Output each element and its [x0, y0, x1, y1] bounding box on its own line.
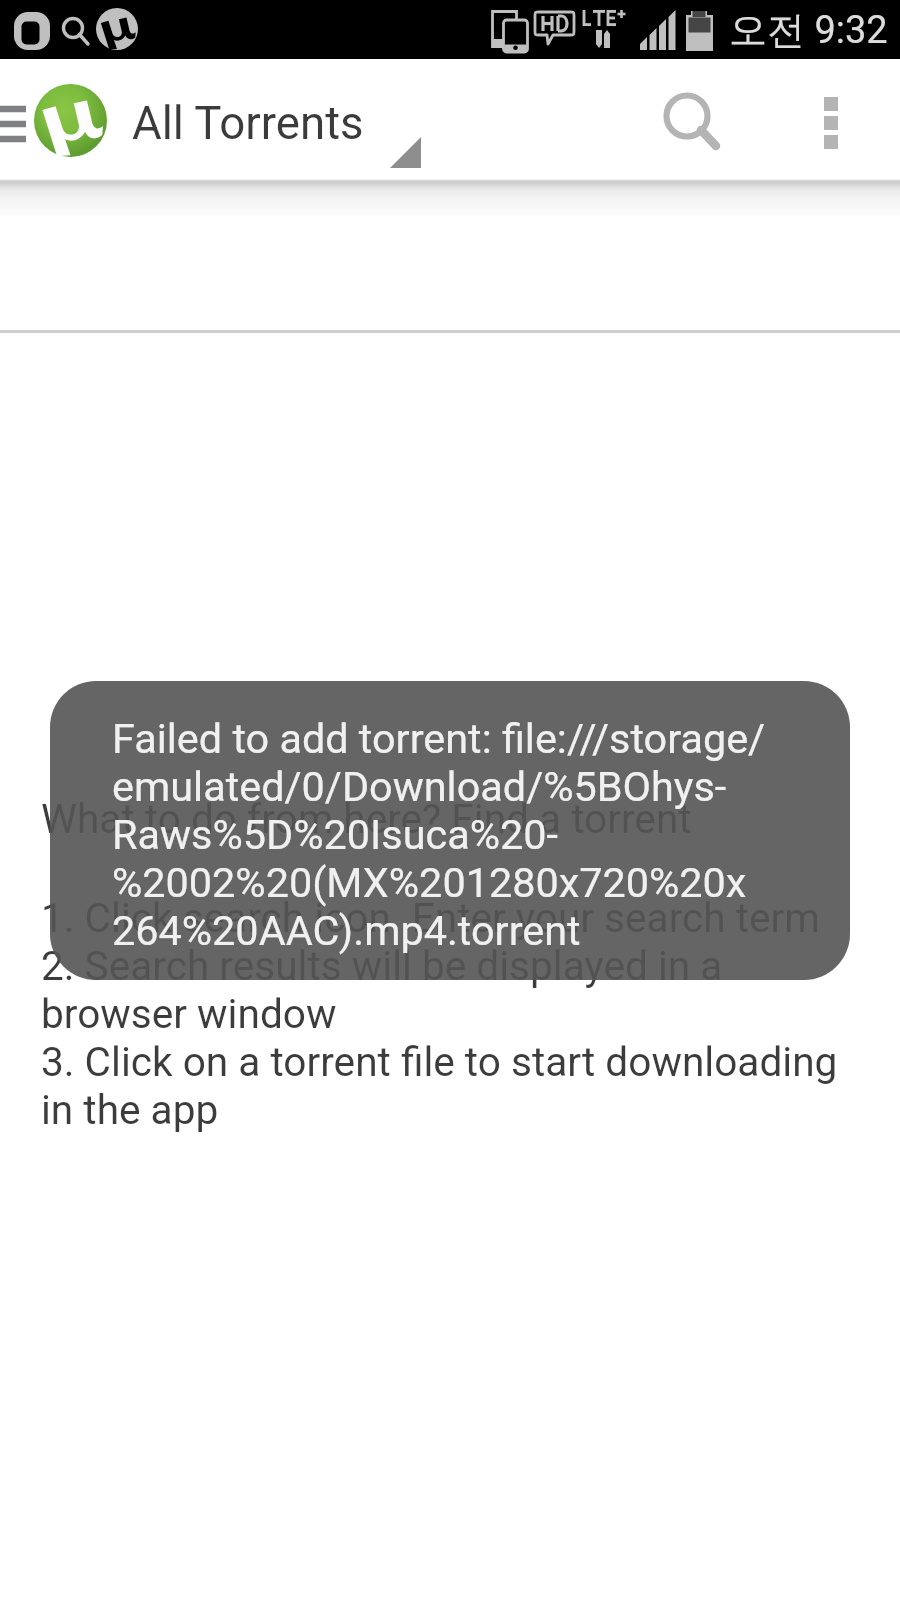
staticText: Failed to add torrent: file:///storage/ … [112, 715, 766, 955]
staticText: What to do from here? Find a torrent [41, 795, 692, 843]
staticText: 오전 9:32 [729, 6, 888, 54]
staticText: All Torrents [132, 97, 364, 150]
button[interactable]: Open navigation drawer [0, 59, 34, 181]
staticText: 1. Click search icon. Enter your search … [41, 894, 838, 1134]
button[interactable]: More options [776, 62, 886, 184]
button[interactable]: Search [635, 62, 755, 184]
